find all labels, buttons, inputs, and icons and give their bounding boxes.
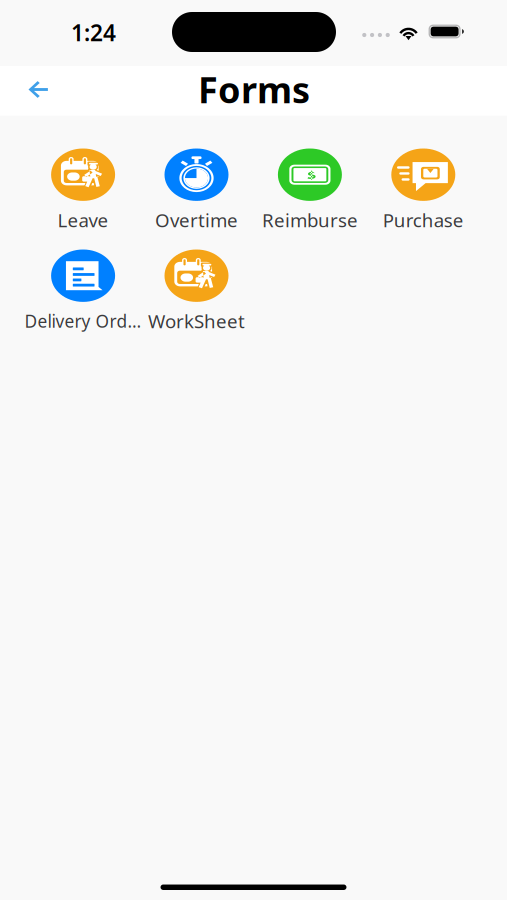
staticText: Forms [198, 65, 310, 113]
button[interactable]: Reimburse [253, 148, 367, 230]
button[interactable]: WorkSheet [140, 249, 253, 331]
staticText: Reimburse [262, 207, 358, 232]
button[interactable]: Back [15, 68, 61, 110]
button[interactable]: Leave [26, 148, 140, 230]
staticText: 1:24 [71, 17, 116, 47]
button[interactable]: Purchase [367, 148, 480, 230]
staticText: Leave [58, 207, 109, 232]
staticText: WorkSheet [148, 308, 245, 333]
staticText: Overtime [155, 207, 238, 232]
button[interactable]: Overtime [140, 148, 253, 230]
staticText: Delivery Ord… [25, 309, 142, 332]
button[interactable]: Delivery Ord… [26, 249, 140, 331]
staticText: Purchase [383, 207, 464, 232]
